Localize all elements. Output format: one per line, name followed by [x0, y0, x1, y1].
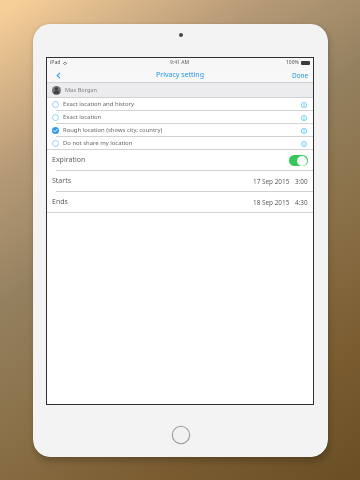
staticText: 3:00 — [295, 177, 308, 186]
button[interactable]: More info — [299, 113, 308, 122]
button[interactable]: More info — [299, 139, 308, 148]
button[interactable]: Expiration — [47, 150, 313, 170]
staticText: 18 Sep 2015 — [253, 198, 290, 207]
staticText: 9:41 AM — [170, 59, 190, 66]
staticText: Done — [292, 71, 309, 80]
button[interactable]: Do not share my location — [47, 137, 313, 149]
staticText: Max Borgan — [65, 86, 97, 94]
staticText: 4:30 — [295, 198, 308, 207]
staticText: 100% — [286, 59, 299, 66]
staticText: 17 Sep 2015 — [253, 177, 290, 186]
button[interactable]: More info — [299, 100, 308, 109]
button[interactable]: Exact location and history — [47, 98, 313, 110]
staticText: Exact location and history — [63, 100, 299, 108]
staticText: Exact location — [63, 113, 299, 121]
staticText: Ends — [52, 197, 253, 207]
button[interactable]: Rough location (shows city, country) — [47, 124, 313, 136]
staticText: iPad — [50, 59, 61, 66]
staticText: Rough location (shows city, country) — [63, 126, 299, 134]
button[interactable]: Done — [292, 67, 309, 83]
button[interactable]: Expiration toggle — [289, 155, 308, 166]
button[interactable]: Max Borgan — [47, 83, 313, 97]
staticText: Expiration — [52, 155, 289, 165]
button[interactable]: Ends — [47, 192, 313, 212]
button[interactable]: Back — [47, 67, 69, 83]
staticText: Starts — [52, 176, 253, 186]
button[interactable]: More info — [299, 126, 308, 135]
staticText: Privacy setting — [156, 70, 204, 80]
button[interactable]: Starts — [47, 171, 313, 191]
button[interactable]: Exact location — [47, 111, 313, 123]
staticText: Do not share my location — [63, 139, 299, 147]
